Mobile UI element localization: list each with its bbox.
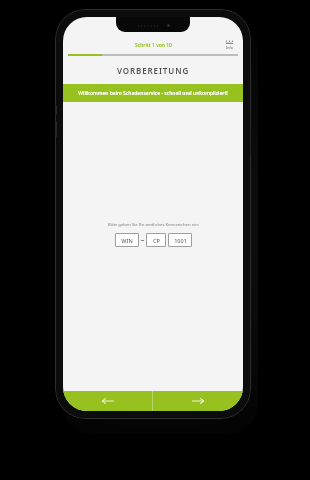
staticText: WIN [121,237,133,244]
staticText: CP [153,237,160,244]
staticText: Bitte geben Sie Ihr amtliches Kennzeiche… [108,222,199,228]
button[interactable]: WIN [115,233,139,247]
staticText: Willkommen beim Schadenservice - schnell… [78,90,228,97]
button[interactable]: Zurück [63,391,152,411]
staticText: VORBEREITUNG [63,65,243,76]
staticText: 1001 [174,237,187,244]
staticText: Schritt 1 von 10 [135,42,172,49]
button[interactable]: Weiter [153,391,243,411]
button[interactable]: Info [222,38,236,52]
staticText: Info [226,45,233,50]
button[interactable]: CP [146,233,166,247]
button[interactable]: 1001 [168,233,192,247]
